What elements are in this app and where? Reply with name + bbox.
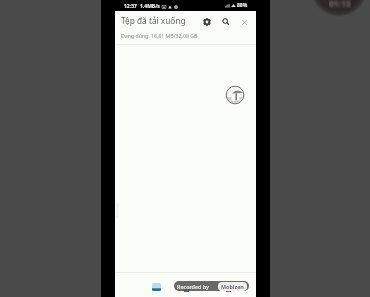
button[interactable]: Settings	[199, 14, 215, 30]
staticText: Mobizen	[221, 283, 244, 290]
button[interactable]: Close	[236, 14, 252, 30]
staticText: 1.4MB/s	[140, 3, 160, 10]
button[interactable]: Assistant bubble	[225, 85, 245, 105]
staticText: 01:13	[329, 0, 351, 9]
staticText: Tệp đã tải xuống	[121, 15, 186, 26]
staticText: Recorded by	[177, 283, 209, 290]
staticText: 88%	[237, 2, 248, 9]
button[interactable]: Search	[218, 14, 234, 30]
staticText: 12:57	[124, 3, 137, 10]
staticText: Đang dùng: 18,81 MB/32,08 GB	[121, 32, 198, 39]
